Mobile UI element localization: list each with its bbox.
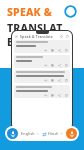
button[interactable]: Copy — [51, 79, 54, 82]
button[interactable]: Speak — [14, 85, 70, 98]
button[interactable]: Settings — [60, 35, 63, 38]
button[interactable]: English — [20, 126, 64, 141]
button[interactable]: Speak — [14, 40, 70, 53]
staticText: Speak & Translate — [20, 34, 53, 39]
button[interactable]: Speak — [44, 49, 47, 52]
button[interactable]: Copy — [51, 94, 54, 97]
button[interactable]: Delete all — [66, 35, 69, 38]
staticText: English — [21, 131, 35, 136]
button[interactable]: Speak — [44, 79, 47, 82]
button[interactable]: Copy — [51, 64, 54, 67]
button[interactable]: Delete — [65, 49, 68, 52]
button[interactable]: Delete — [65, 79, 68, 82]
button[interactable]: Speak English — [7, 128, 18, 139]
staticText: SPEAK & — [7, 5, 53, 19]
button[interactable]: Delete — [65, 94, 68, 97]
button[interactable]: Speak — [44, 94, 47, 97]
button[interactable]: Copy — [51, 49, 54, 52]
button[interactable]: Speak Hindi — [66, 128, 77, 139]
button[interactable]: Speak — [14, 70, 70, 83]
button[interactable]: Speak — [44, 64, 47, 67]
staticText: Hindi — [48, 131, 59, 136]
button[interactable]: Delete — [65, 64, 68, 67]
staticText: TRANSLATE — [7, 21, 65, 49]
button[interactable]: Share — [58, 64, 61, 67]
button[interactable]: Swap languages — [41, 131, 47, 137]
button[interactable]: Share — [58, 49, 61, 52]
button[interactable]: Share — [58, 94, 61, 97]
button[interactable]: Speak — [14, 55, 70, 68]
button[interactable]: Share — [58, 79, 61, 82]
button[interactable]: Menu — [15, 35, 18, 38]
